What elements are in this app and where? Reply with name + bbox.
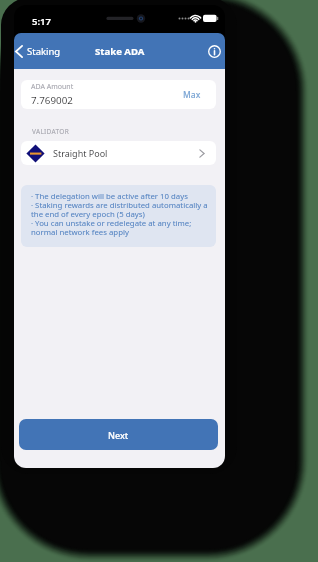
button[interactable]: ADA Amount: [21, 80, 216, 109]
staticText: 7.769002: [31, 94, 73, 107]
staticText: Staking: [27, 45, 61, 58]
button[interactable]: Straight Pool: [21, 141, 216, 165]
staticText: Max: [183, 89, 201, 101]
button[interactable]: Staking: [14, 41, 69, 62]
staticText: VALIDATOR: [32, 127, 70, 136]
staticText: ADA Amount: [31, 82, 74, 92]
staticText: Straight Pool: [53, 147, 108, 159]
button[interactable]: Next: [19, 419, 218, 450]
staticText: 5:17: [32, 15, 51, 28]
staticText: Stake ADA: [95, 45, 145, 58]
button[interactable]: Info: [205, 42, 223, 60]
staticText: · The delegation will be active after 10…: [31, 191, 207, 237]
staticText: Next: [108, 429, 129, 441]
